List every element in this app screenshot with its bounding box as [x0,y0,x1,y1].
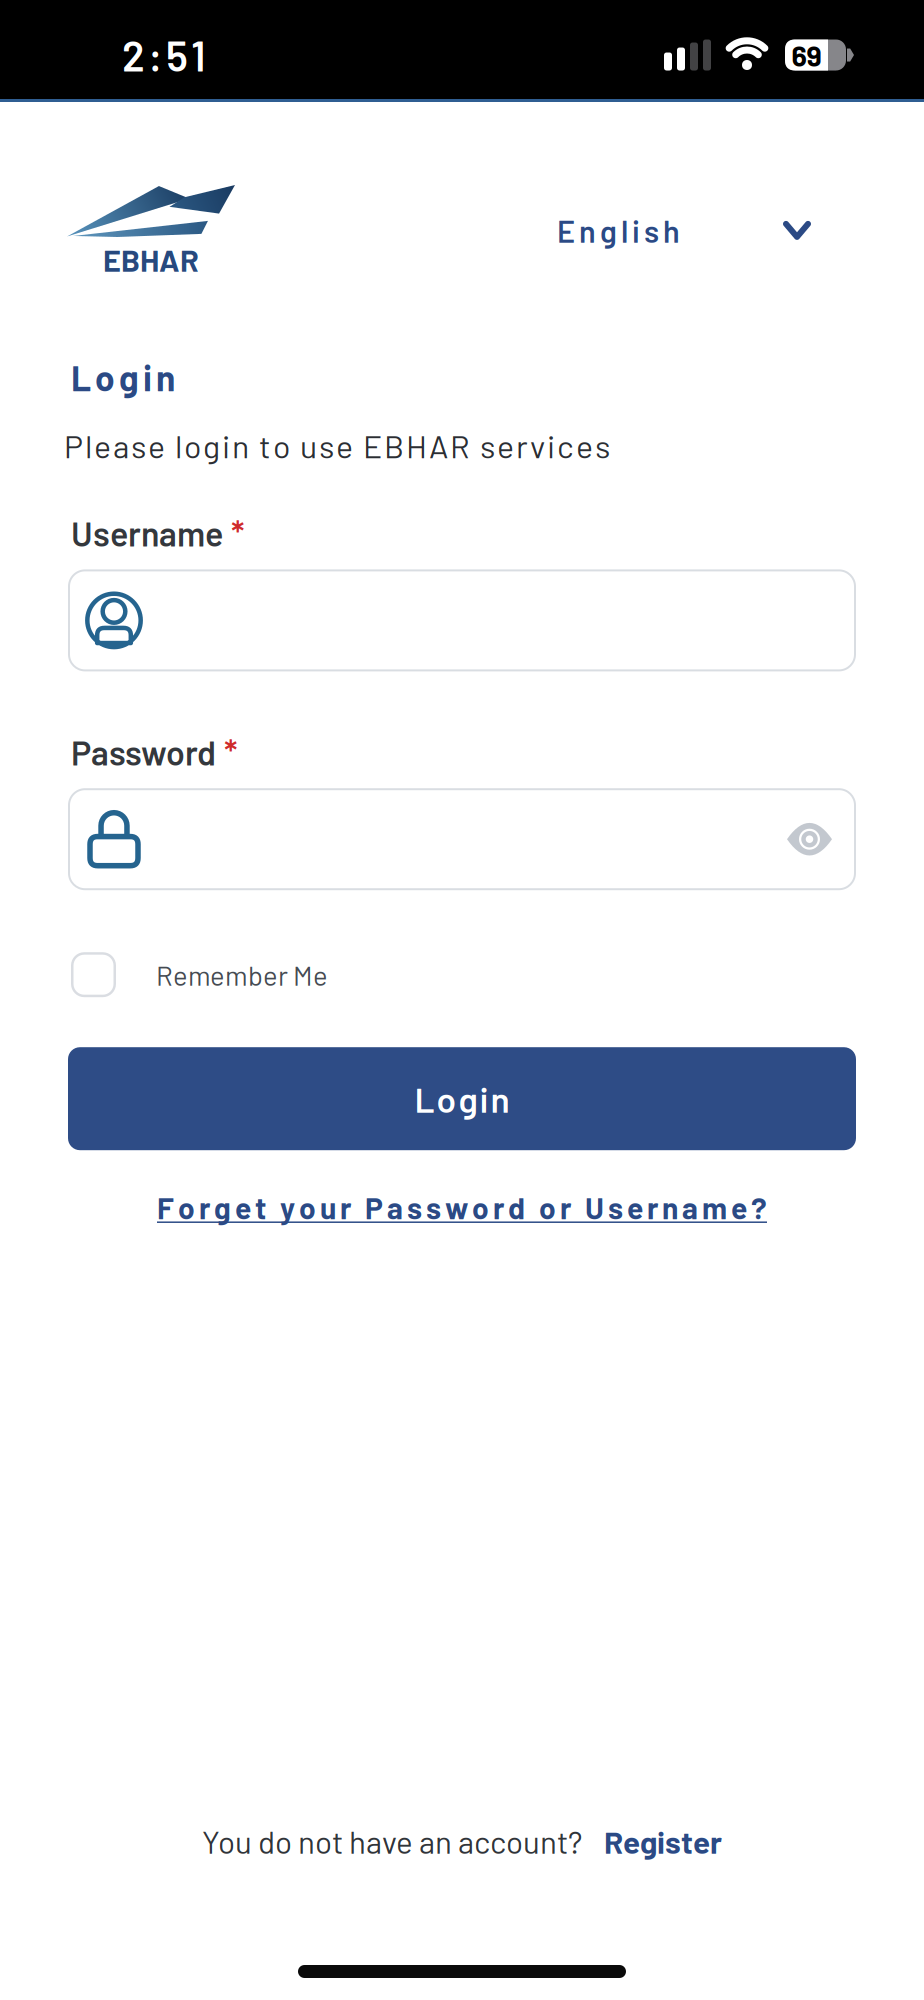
staticText: 69 [791,38,821,72]
staticText: * [224,731,238,772]
staticText: Password [71,731,216,772]
staticText: Remember Me [156,958,328,991]
staticText: 2 : 5 1 [122,30,206,80]
staticText: EBHAR [103,241,199,278]
staticText: L o g i n [414,1077,509,1120]
button[interactable]: L o g i n [68,1047,856,1150]
staticText: Register [604,1822,722,1860]
button[interactable]: Remember Me [71,952,924,997]
staticText: P l e a s e l o g i n t o u s e E B H A … [64,426,610,465]
staticText: * [231,513,245,553]
staticText: F o r g e t y o u r P a s s w o r d o r … [157,1189,767,1225]
button[interactable]: E n g l i s h [557,212,808,249]
staticText: E n g l i s h [557,212,680,249]
staticText: L o g i n [71,356,175,398]
button[interactable]: F o r g e t y o u r P a s s w o r d o r … [157,1189,767,1225]
staticText: Username [71,513,223,553]
button[interactable]: Show password [787,824,832,855]
button[interactable]: Register [604,1822,722,1860]
staticText: You do not have an account? [202,1822,582,1860]
